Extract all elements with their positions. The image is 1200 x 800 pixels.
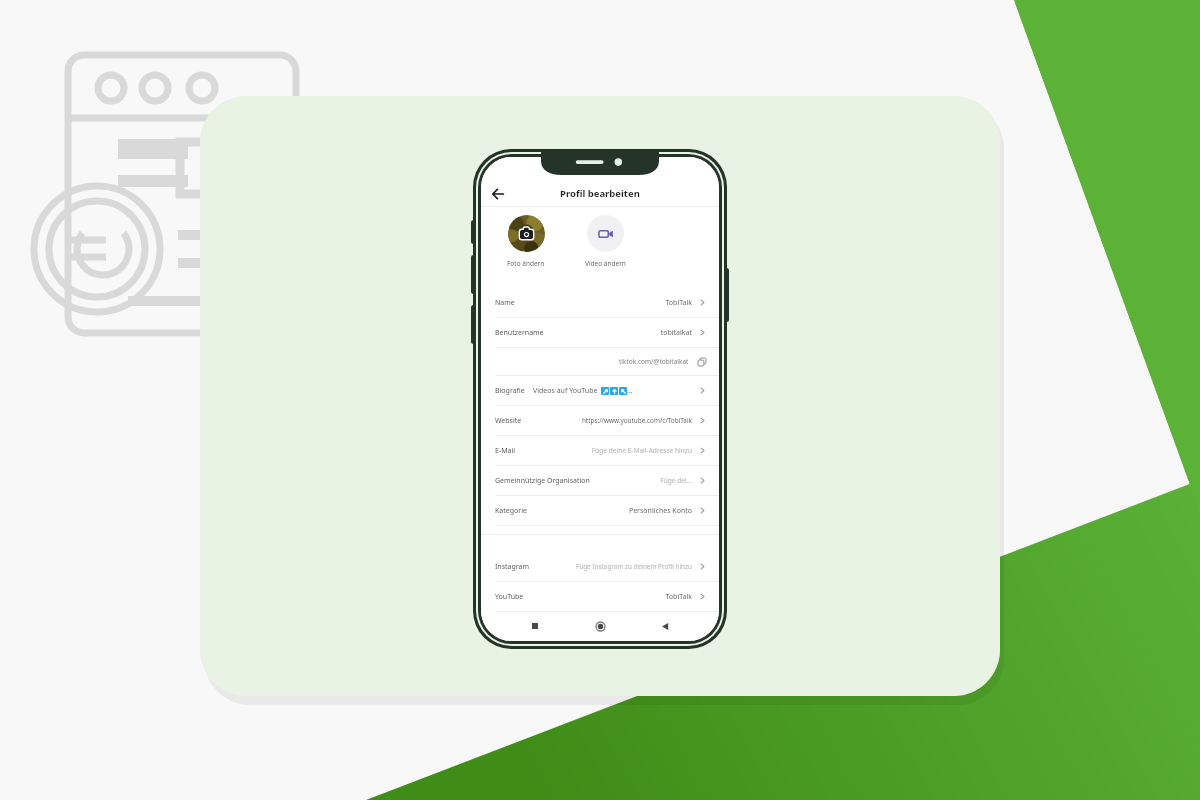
button[interactable]: Video ändern bbox=[587, 215, 624, 252]
staticText: Persönliches Konto bbox=[628, 506, 692, 516]
staticText: TobiTalk bbox=[665, 592, 692, 602]
button[interactable]: Übersicht bbox=[524, 615, 546, 637]
button[interactable]: Instagram bbox=[481, 552, 719, 582]
button[interactable]: Biografie bbox=[481, 376, 719, 406]
staticText: Website bbox=[495, 416, 522, 426]
staticText: E-Mail bbox=[495, 446, 516, 456]
staticText: Gemeinnützige Organisation bbox=[495, 476, 590, 486]
staticText: Instagram bbox=[495, 562, 530, 572]
staticText: Füge dei... bbox=[660, 476, 692, 485]
button[interactable]: Startbildschirm bbox=[589, 615, 611, 637]
button[interactable]: Website bbox=[481, 406, 719, 436]
button[interactable]: tiktok.com/@tobitalkat bbox=[481, 348, 719, 376]
staticText: Foto ändern bbox=[507, 259, 545, 268]
button[interactable]: Kategorie bbox=[481, 496, 719, 526]
staticText: Biografie bbox=[495, 386, 525, 396]
button[interactable]: Foto ändern bbox=[508, 215, 545, 252]
button[interactable]: YouTube bbox=[481, 582, 719, 612]
staticText: Benutzername bbox=[495, 328, 544, 338]
staticText: Name bbox=[495, 298, 515, 308]
button[interactable]: Zurück bbox=[488, 184, 508, 204]
staticText: ... bbox=[627, 386, 633, 396]
staticText: TobiTalk bbox=[665, 298, 692, 308]
staticText: Füge Instagram zu deinem Profil hinzu bbox=[575, 562, 692, 571]
button[interactable]: Link kopieren bbox=[697, 357, 706, 366]
staticText: YouTube bbox=[495, 592, 524, 602]
button[interactable]: Name bbox=[481, 288, 719, 318]
staticText: Video ändern bbox=[585, 259, 626, 268]
button[interactable]: Gemeinnützige Organisation bbox=[481, 466, 719, 496]
staticText: tobitalkat bbox=[660, 328, 692, 338]
button[interactable]: Zurück bbox=[654, 615, 676, 637]
staticText: Kategorie bbox=[495, 506, 527, 516]
staticText: tiktok.com/@tobitalkat bbox=[619, 357, 689, 366]
button[interactable]: E-Mail bbox=[481, 436, 719, 466]
staticText: Videos auf YouTube bbox=[533, 386, 598, 396]
staticText: https://www.youtube.com/c/TobiTalk bbox=[581, 416, 692, 425]
button[interactable]: Benutzername bbox=[481, 318, 719, 348]
staticText: Profil bearbeiten bbox=[560, 187, 640, 200]
staticText: Füge deine E-Mail-Adresse hinzu bbox=[591, 446, 692, 455]
